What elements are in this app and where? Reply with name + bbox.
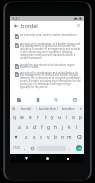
staticText: ?123 bbox=[13, 146, 20, 150]
button[interactable]: q bbox=[10, 112, 18, 122]
button[interactable]: o bbox=[70, 112, 77, 122]
button[interactable]: i bbox=[63, 112, 70, 122]
staticText: p bbox=[79, 114, 82, 121]
staticText: y bbox=[51, 114, 54, 121]
button[interactable]: borderline also denotes the boundary reg… bbox=[14, 63, 82, 69]
button[interactable]: providing for coordination and rehabilit… bbox=[14, 71, 82, 89]
staticText: o bbox=[72, 114, 75, 121]
staticText: providing for coordination of a border r… bbox=[20, 42, 81, 60]
button[interactable]: Back bbox=[22, 154, 31, 163]
button[interactable]: Clear bbox=[75, 22, 82, 29]
button[interactable]: Search bbox=[52, 96, 60, 104]
button[interactable]: . bbox=[67, 142, 73, 154]
button[interactable]: p bbox=[77, 112, 84, 122]
button[interactable]: d bbox=[31, 122, 38, 132]
button[interactable]: u bbox=[56, 112, 63, 122]
staticText: providing for coordination and rehabilit… bbox=[20, 71, 81, 89]
staticText: . bbox=[69, 145, 71, 152]
staticText: g bbox=[47, 124, 50, 131]
button[interactable]: n bbox=[59, 132, 66, 142]
staticText: e bbox=[29, 114, 32, 121]
button[interactable]: m bbox=[66, 132, 73, 142]
staticText: z bbox=[25, 134, 28, 141]
staticText: i bbox=[66, 114, 68, 121]
button[interactable]: a bbox=[15, 122, 23, 132]
button[interactable]: x bbox=[30, 132, 38, 142]
button[interactable]: Recent apps bbox=[63, 154, 72, 163]
staticText: q bbox=[13, 114, 16, 121]
staticText: bordel bbox=[21, 106, 32, 111]
button[interactable]: Dictionary bbox=[15, 96, 23, 104]
button[interactable]: z bbox=[22, 132, 30, 142]
button[interactable]: b bbox=[52, 132, 59, 142]
button[interactable]: h bbox=[52, 122, 59, 132]
button[interactable]: Enter bbox=[76, 145, 82, 151]
staticText: k bbox=[68, 124, 71, 131]
button[interactable]: Emoji bbox=[28, 146, 36, 151]
staticText: borderline also denotes the boundary reg… bbox=[20, 63, 81, 69]
button[interactable]: t bbox=[42, 112, 49, 122]
staticText: u bbox=[58, 114, 61, 121]
staticText: ▾ bbox=[80, 107, 82, 111]
button[interactable]: an industrial area used for textile manu… bbox=[14, 33, 82, 39]
button[interactable]: Back bbox=[12, 22, 19, 29]
button[interactable]: w bbox=[18, 112, 26, 122]
button[interactable]: ?123 bbox=[10, 142, 22, 154]
staticText: borders bbox=[62, 106, 75, 111]
staticText: bordel bbox=[21, 22, 38, 29]
staticText: w bbox=[20, 114, 24, 121]
button[interactable]: , bbox=[22, 142, 28, 154]
button[interactable]: g bbox=[45, 122, 52, 132]
button[interactable]: Bookmarks bbox=[34, 96, 42, 104]
button[interactable]: borderline bbox=[37, 105, 57, 112]
staticText: v bbox=[47, 134, 50, 141]
staticText: n bbox=[61, 134, 64, 141]
staticText: b bbox=[54, 134, 57, 141]
staticText: 9:41 bbox=[12, 16, 20, 21]
button[interactable]: v bbox=[45, 132, 52, 142]
button[interactable]: borders bbox=[58, 105, 78, 112]
button[interactable]: More suggestions bbox=[78, 106, 84, 112]
staticText: f bbox=[41, 124, 43, 131]
button[interactable]: bordel bbox=[17, 105, 36, 112]
staticText: an industrial area used for textile manu… bbox=[20, 33, 81, 37]
button[interactable]: Search suggestions bbox=[10, 105, 17, 112]
button[interactable]: Home bbox=[43, 154, 52, 163]
button[interactable]: Profile bbox=[71, 96, 79, 104]
button[interactable]: c bbox=[38, 132, 45, 142]
button[interactable]: f bbox=[38, 122, 45, 132]
button[interactable]: s bbox=[23, 122, 31, 132]
staticText: l bbox=[76, 124, 78, 131]
staticText: r bbox=[37, 114, 39, 121]
staticText: x bbox=[33, 134, 36, 141]
button[interactable]: Shift bbox=[10, 132, 22, 142]
staticText: m bbox=[67, 134, 72, 141]
button[interactable]: r bbox=[34, 112, 42, 122]
button[interactable]: k bbox=[66, 122, 73, 132]
staticText: c bbox=[40, 134, 43, 141]
button[interactable]: e bbox=[26, 112, 34, 122]
staticText: h bbox=[54, 124, 57, 131]
staticText: a bbox=[18, 124, 21, 131]
button[interactable]: Backspace bbox=[73, 132, 84, 142]
button[interactable]: y bbox=[49, 112, 56, 122]
staticText: t bbox=[45, 114, 47, 121]
staticText: borderline bbox=[39, 106, 56, 111]
staticText: , bbox=[24, 145, 26, 152]
button[interactable]: Back bbox=[10, 21, 84, 30]
staticText: j bbox=[62, 124, 64, 131]
button[interactable]: l bbox=[73, 122, 80, 132]
staticText: d bbox=[33, 124, 36, 131]
staticText: s bbox=[26, 124, 29, 131]
button[interactable]: providing for coordination of a border r… bbox=[14, 42, 82, 60]
button[interactable]: j bbox=[59, 122, 66, 132]
